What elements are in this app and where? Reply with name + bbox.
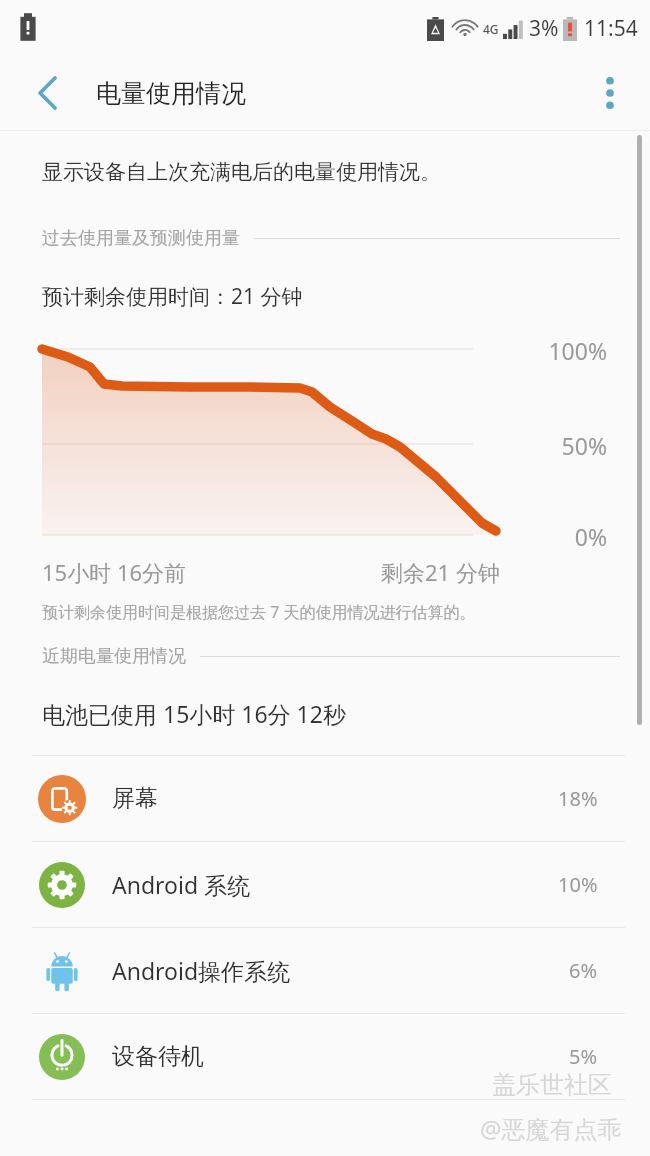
- staticText: 屏幕: [112, 784, 158, 813]
- button[interactable]: More options: [582, 65, 638, 121]
- button[interactable]: Back: [20, 65, 76, 121]
- staticText: 50%: [536, 430, 607, 461]
- button[interactable]: 设备待机: [0, 1014, 650, 1099]
- staticText: 18%: [558, 785, 598, 812]
- staticText: 5%: [569, 1043, 598, 1070]
- staticText: 电量使用情况: [96, 78, 246, 109]
- staticText: 过去使用量及预测使用量: [42, 227, 240, 250]
- staticText: 电池已使用 15小时 16分 12秒: [42, 698, 346, 729]
- staticText: Android 系统: [112, 869, 251, 900]
- staticText: 15小时 16分前: [42, 557, 187, 587]
- staticText: 100%: [536, 335, 607, 366]
- staticText: 0%: [536, 521, 607, 552]
- button[interactable]: Android 系统: [0, 842, 650, 927]
- staticText: 4G: [483, 21, 499, 37]
- button[interactable]: 屏幕: [0, 756, 650, 841]
- staticText: 盖乐世社区: [492, 1070, 612, 1100]
- staticText: 设备待机: [112, 1042, 204, 1071]
- staticText: 近期电量使用情况: [42, 645, 186, 668]
- button[interactable]: Android操作系统: [0, 928, 650, 1013]
- staticText: 预计剩余使用时间是根据您过去 7 天的使用情况进行估算的。: [42, 601, 476, 623]
- staticText: 剩余21 分钟: [381, 557, 500, 587]
- staticText: @恶魔有点乖: [480, 1112, 622, 1145]
- staticText: 预计剩余使用时间：21 分钟: [42, 282, 303, 311]
- staticText: 3%: [529, 14, 559, 43]
- staticText: 10%: [558, 871, 598, 898]
- staticText: 11:54: [584, 14, 638, 43]
- staticText: Android操作系统: [112, 955, 291, 986]
- staticText: 6%: [569, 957, 598, 984]
- staticText: 显示设备自上次充满电后的电量使用情况。: [42, 159, 441, 185]
